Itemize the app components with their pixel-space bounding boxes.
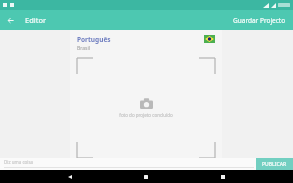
button[interactable]: Editor — [25, 11, 47, 29]
staticText: foto do projeto concluído — [119, 112, 173, 118]
button[interactable]: Recent apps — [216, 170, 229, 183]
button[interactable]: Home — [139, 170, 152, 183]
button[interactable]: Português — [77, 35, 215, 52]
staticText: Português — [77, 35, 111, 44]
staticText: Editor — [25, 15, 47, 25]
button[interactable]: Add project photo — [77, 58, 215, 158]
staticText: Brasil — [77, 45, 90, 52]
button[interactable]: Diz uma coisa — [0, 158, 256, 170]
button[interactable]: Back — [0, 10, 20, 30]
button[interactable]: Guardar Projecto — [226, 11, 293, 30]
staticText: Diz uma coisa — [4, 159, 34, 165]
staticText: Guardar Projecto — [233, 16, 286, 25]
button[interactable]: Back — [63, 170, 76, 183]
staticText: PUBLICAR — [262, 161, 287, 168]
button[interactable]: PUBLICAR — [256, 158, 293, 170]
